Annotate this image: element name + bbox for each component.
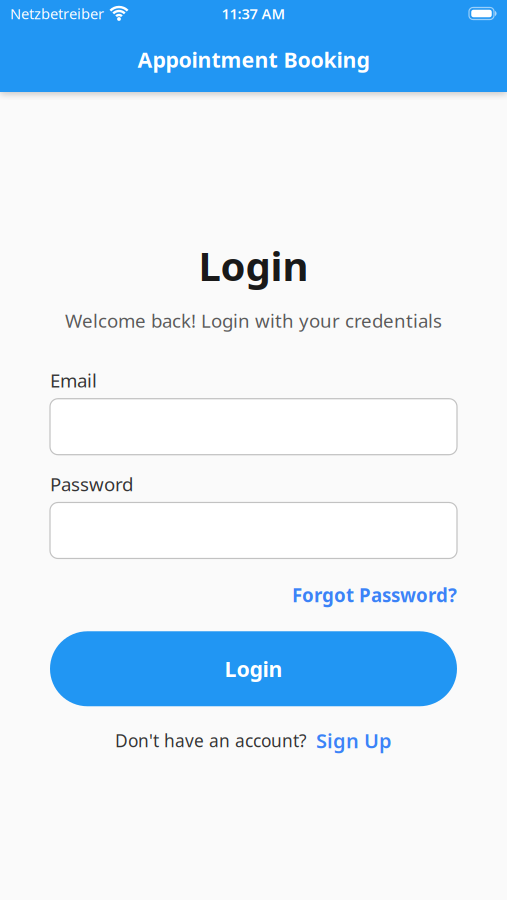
button[interactable]: Email — [50, 399, 457, 455]
staticText: Welcome back! Login with your credential… — [65, 308, 442, 333]
staticText: Login — [198, 239, 308, 292]
staticText: Don't have an account? — [115, 729, 307, 752]
staticText: Sign Up — [316, 727, 392, 754]
staticText: Password — [50, 472, 133, 496]
button[interactable]: Login — [50, 631, 457, 706]
staticText: Login — [224, 655, 282, 683]
staticText: Appointment Booking — [137, 45, 369, 74]
button[interactable]: Forgot Password? — [292, 582, 457, 607]
button[interactable]: Password — [50, 502, 457, 558]
button[interactable]: Sign Up — [316, 727, 392, 754]
staticText: Netzbetreiber — [10, 4, 104, 23]
staticText: 11:37 AM — [221, 4, 285, 23]
staticText: Forgot Password? — [292, 582, 457, 607]
staticText: Email — [50, 368, 97, 393]
